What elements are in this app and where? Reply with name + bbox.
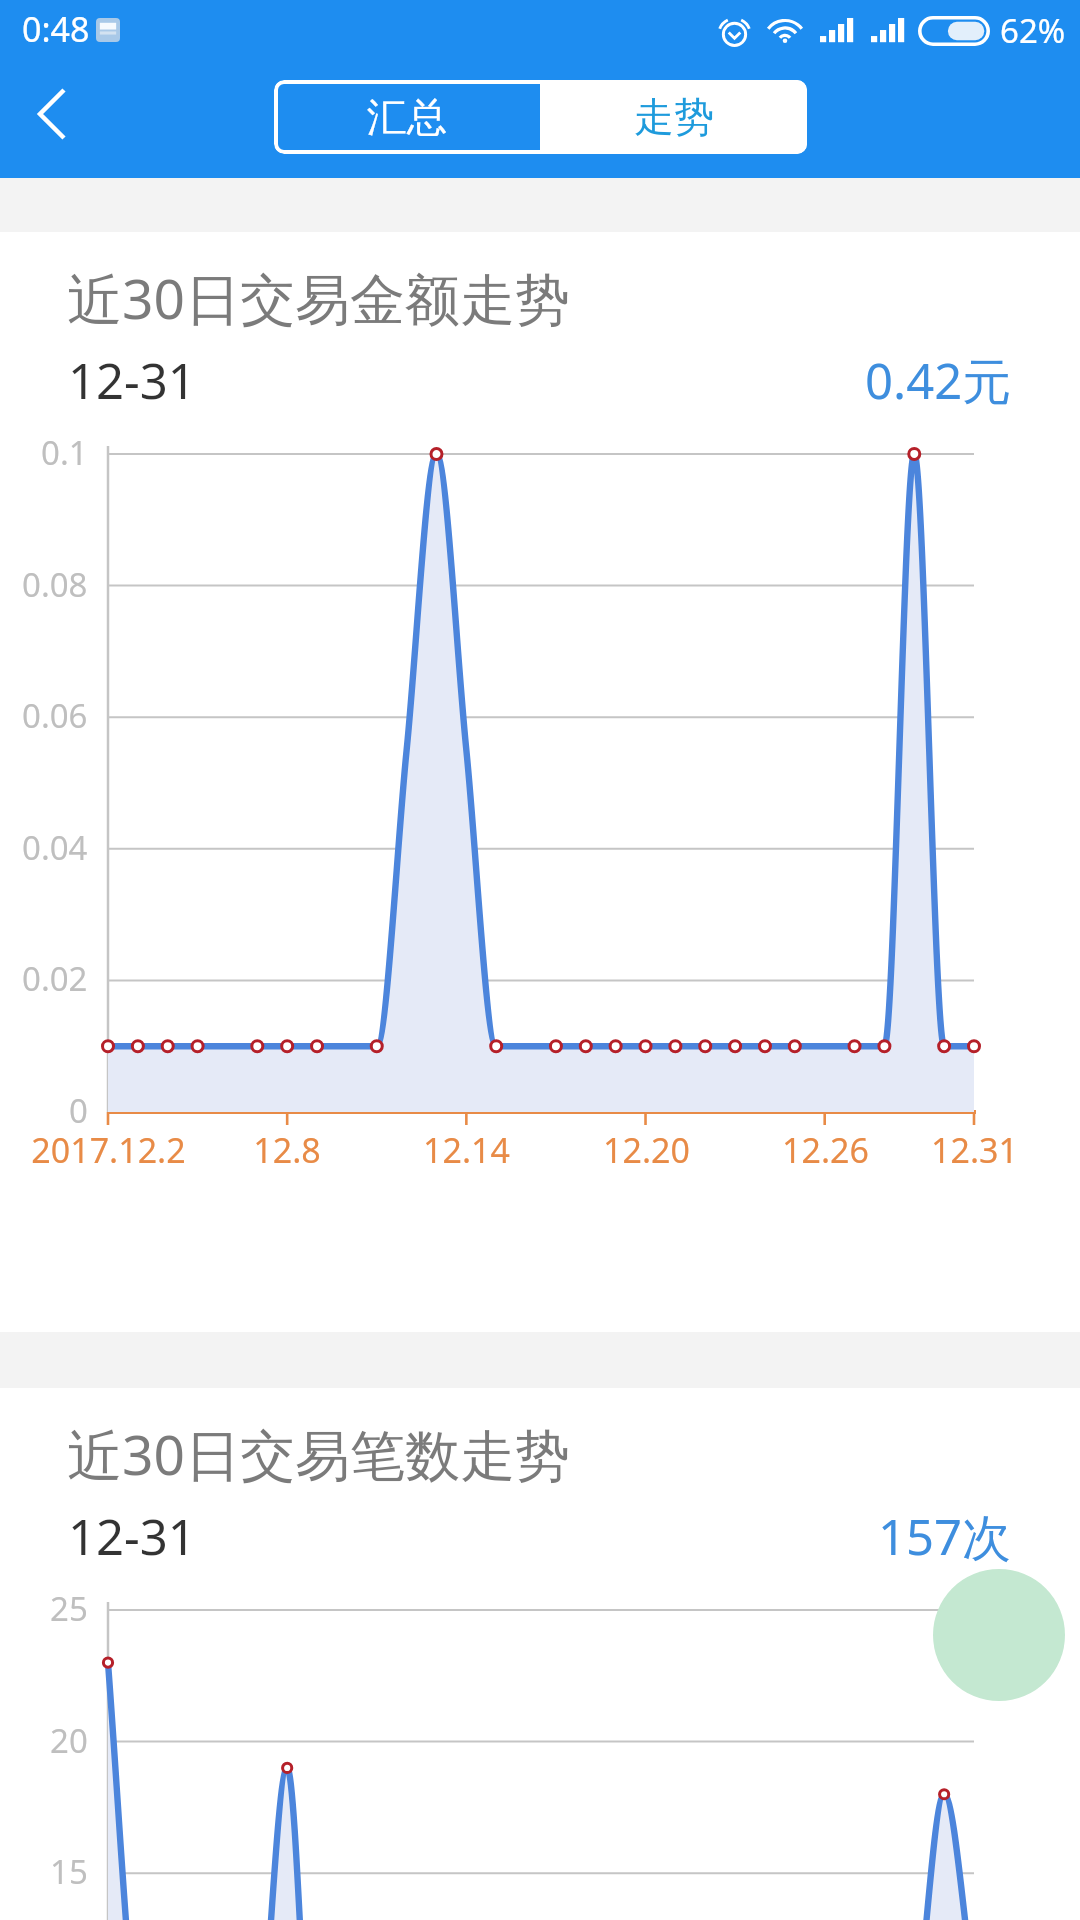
button[interactable]: Back: [0, 60, 104, 178]
staticText: 20: [50, 1718, 88, 1763]
staticText: 0.02: [22, 956, 88, 1001]
staticText: 走势: [634, 92, 714, 142]
button[interactable]: Scroll indicator: [933, 1569, 1065, 1701]
staticText: 62%: [1000, 8, 1066, 53]
staticText: 12.31: [931, 1127, 1018, 1173]
staticText: 0: [69, 1088, 88, 1133]
button[interactable]: 汇总: [274, 80, 540, 154]
button[interactable]: 走势: [540, 80, 807, 154]
staticText: 0:48: [22, 6, 90, 52]
staticText: 12.26: [782, 1127, 869, 1173]
staticText: 汇总: [367, 92, 447, 142]
staticText: 12-31: [68, 1503, 196, 1570]
staticText: 0.08: [22, 562, 88, 607]
staticText: 近30日交易笔数走势: [67, 1416, 570, 1491]
staticText: 12.20: [603, 1127, 690, 1173]
staticText: 157次: [878, 1503, 1012, 1570]
staticText: 25: [50, 1586, 88, 1631]
staticText: 12.14: [423, 1127, 510, 1173]
staticText: 15: [50, 1849, 88, 1894]
staticText: 0.1: [41, 430, 88, 475]
staticText: 近30日交易金额走势: [67, 260, 570, 335]
staticText: 0.04: [22, 825, 88, 870]
staticText: 12.8: [253, 1127, 321, 1173]
staticText: 2017.12.2: [31, 1127, 186, 1173]
staticText: 0.42元: [865, 347, 1012, 414]
staticText: 12-31: [68, 347, 196, 414]
staticText: 0.06: [22, 693, 88, 738]
